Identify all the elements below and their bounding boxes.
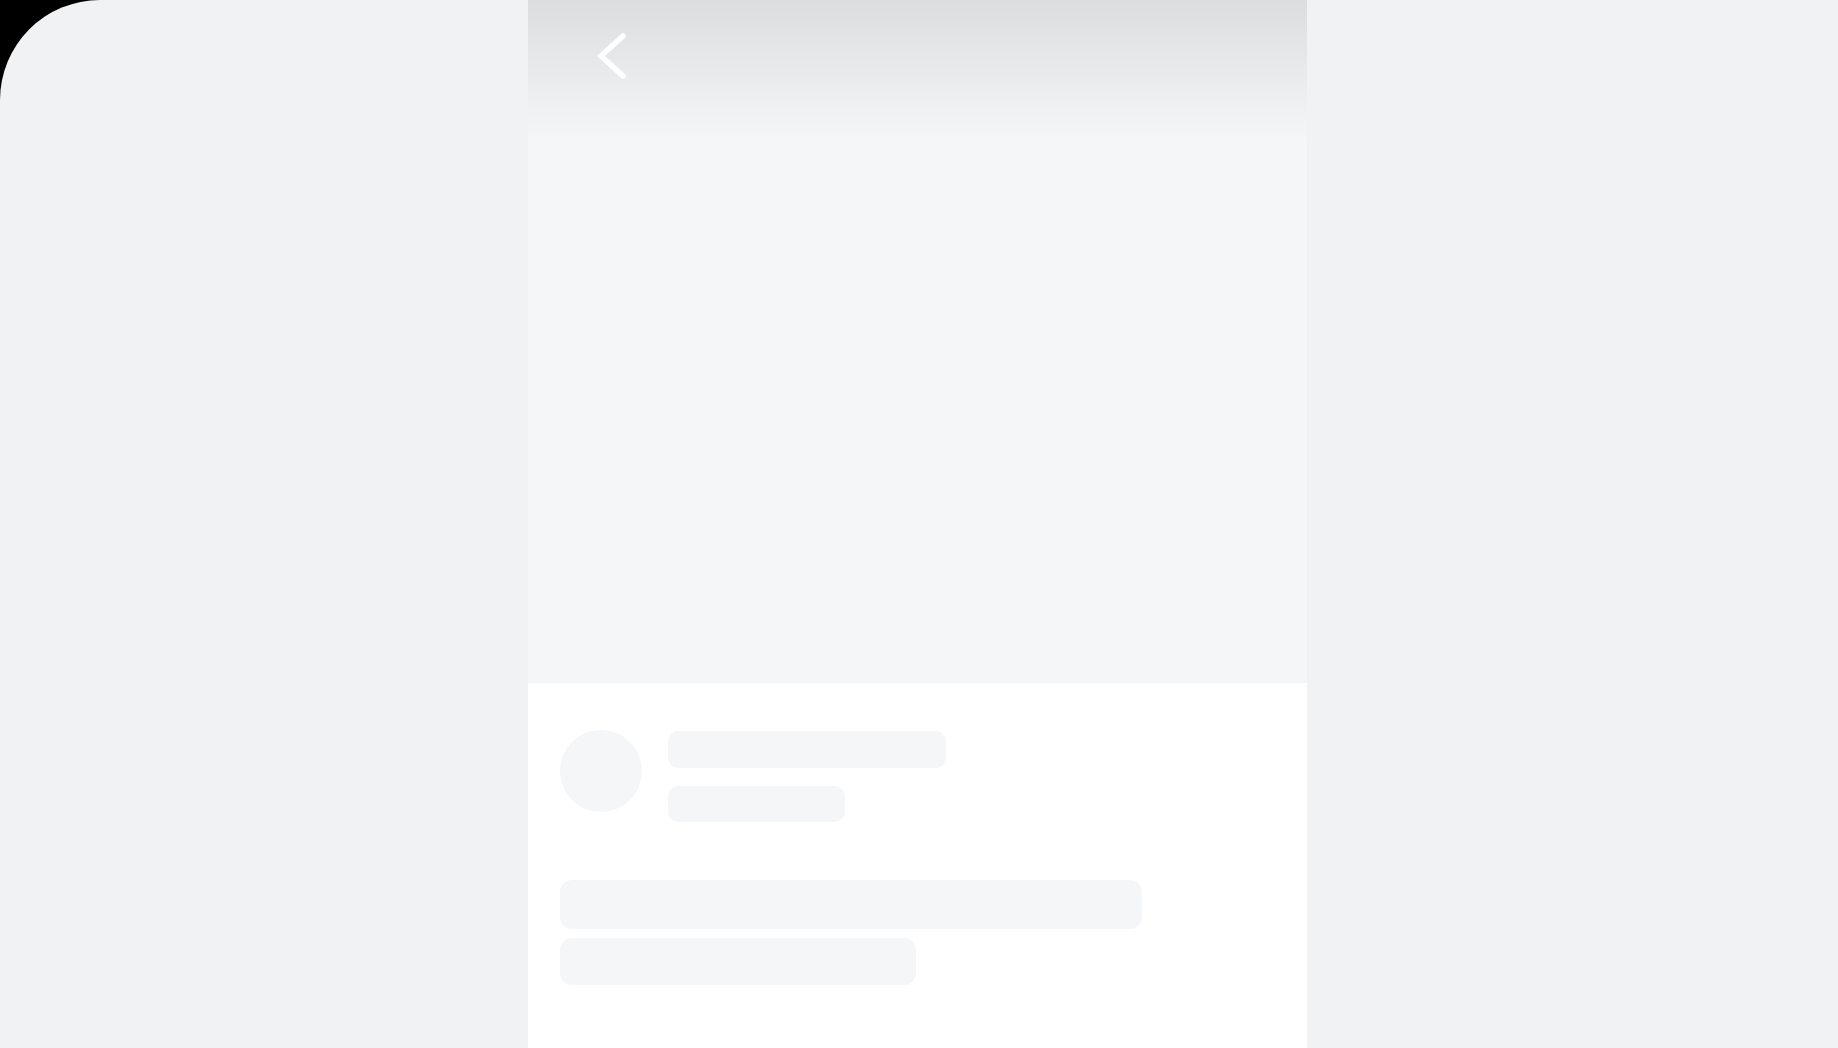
button[interactable]: Back xyxy=(568,12,656,100)
